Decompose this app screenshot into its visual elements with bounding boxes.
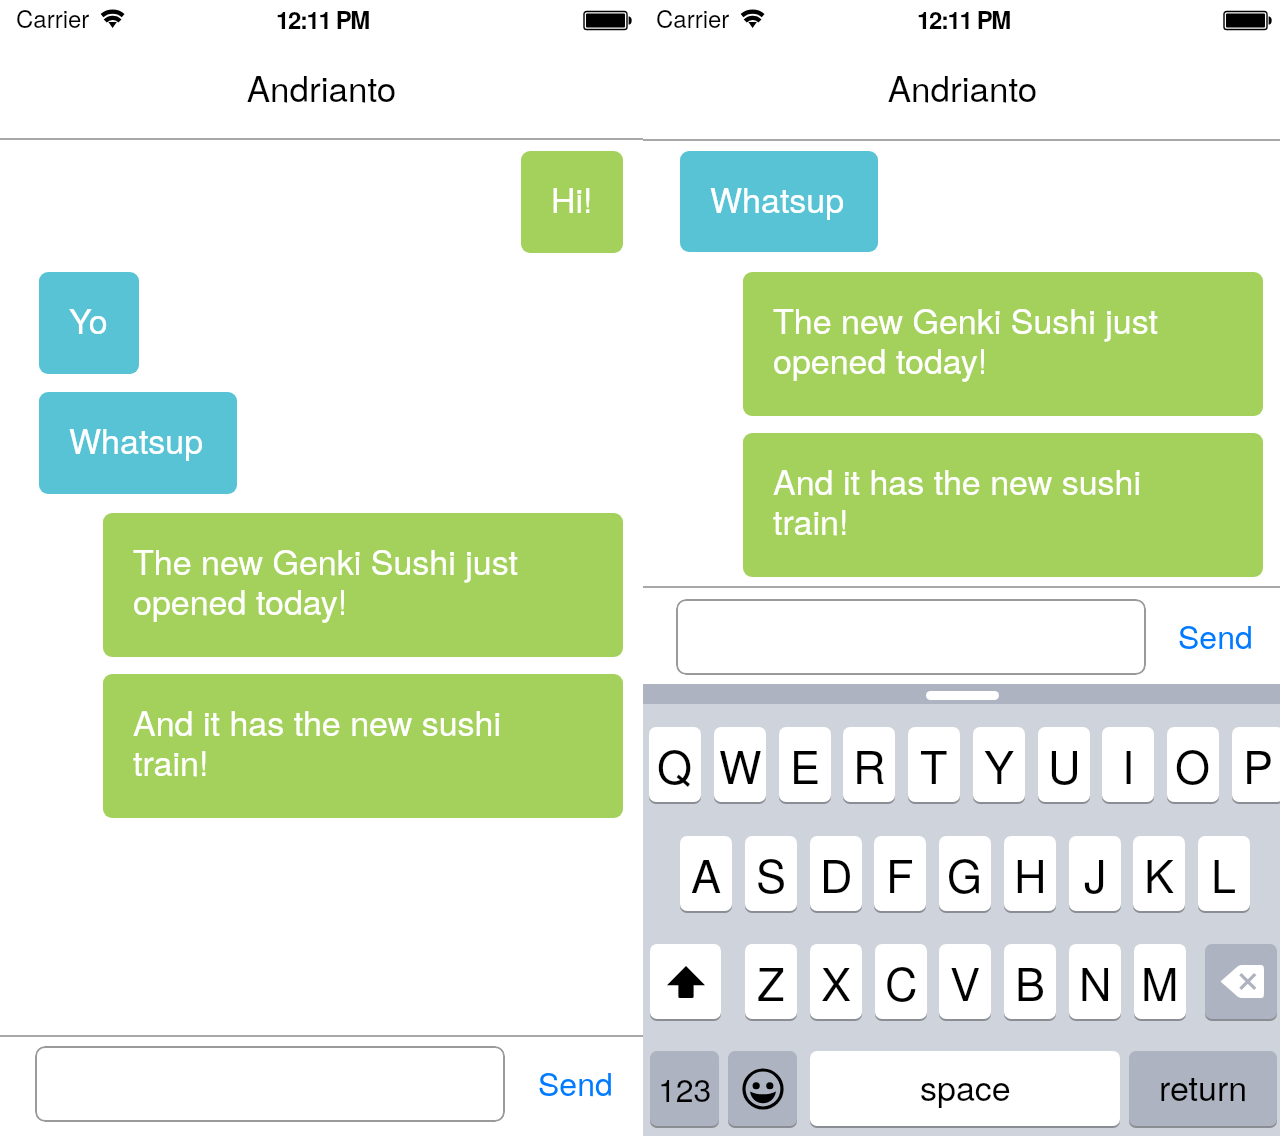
- staticText: B: [1015, 949, 1046, 1013]
- staticText: The new Genki Sushi just opened today!: [773, 295, 1158, 384]
- staticText: Yo: [69, 295, 108, 344]
- staticText: 123: [658, 1065, 712, 1111]
- staticText: Carrier: [16, 0, 90, 34]
- button[interactable]: U: [1038, 727, 1090, 802]
- staticText: C: [885, 949, 918, 1013]
- button[interactable]: Backspace: [1205, 944, 1277, 1019]
- staticText: Hi!: [551, 174, 593, 223]
- button[interactable]: The new Genki Sushi just opened today!: [103, 513, 623, 657]
- staticText: X: [821, 949, 852, 1013]
- button[interactable]: I: [1102, 727, 1154, 802]
- button[interactable]: return: [1129, 1051, 1277, 1126]
- other: Wi-Fi signal: [739, 8, 767, 30]
- staticText: And it has the new sushi train!: [133, 697, 502, 786]
- button[interactable]: Whatsup: [680, 151, 878, 252]
- button[interactable]: Shift: [650, 944, 721, 1019]
- staticText: Send: [538, 1059, 613, 1105]
- button[interactable]: Message input: [35, 1046, 505, 1122]
- button[interactable]: L: [1198, 836, 1250, 911]
- button[interactable]: P: [1232, 727, 1280, 802]
- button[interactable]: Yo: [39, 272, 139, 374]
- staticText: Andrianto: [0, 62, 643, 112]
- staticText: Whatsup: [69, 415, 204, 464]
- button[interactable]: H: [1004, 836, 1056, 911]
- staticText: O: [1175, 732, 1211, 796]
- button[interactable]: D: [810, 836, 862, 911]
- button[interactable]: space: [810, 1051, 1120, 1126]
- staticText: V: [950, 949, 981, 1013]
- button[interactable]: And it has the new sushi train!: [743, 433, 1263, 577]
- button[interactable]: F: [874, 836, 926, 911]
- button[interactable]: A: [680, 836, 732, 911]
- staticText: Send: [1178, 612, 1253, 658]
- other: Wi-Fi signal: [99, 8, 127, 30]
- staticText: W: [719, 732, 762, 796]
- button[interactable]: W: [714, 727, 766, 802]
- button[interactable]: J: [1069, 836, 1121, 911]
- staticText: The new Genki Sushi just opened today!: [133, 536, 518, 625]
- staticText: I: [1122, 732, 1135, 796]
- button[interactable]: Emoji: [728, 1051, 797, 1126]
- staticText: And it has the new sushi train!: [773, 456, 1142, 545]
- button[interactable]: S: [745, 836, 797, 911]
- button[interactable]: Hide keyboard: [926, 691, 999, 700]
- staticText: S: [756, 841, 787, 905]
- staticText: 12:11 PM: [917, 2, 1010, 36]
- button[interactable]: Whatsup: [39, 392, 237, 494]
- button[interactable]: O: [1167, 727, 1219, 802]
- staticText: T: [920, 732, 948, 796]
- button[interactable]: Q: [649, 727, 701, 802]
- button[interactable]: The new Genki Sushi just opened today!: [743, 272, 1263, 416]
- staticText: Y: [984, 732, 1015, 796]
- staticText: D: [820, 841, 853, 905]
- staticText: P: [1243, 732, 1274, 796]
- button[interactable]: N: [1069, 944, 1121, 1019]
- button[interactable]: X: [810, 944, 862, 1019]
- button[interactable]: Message input: [676, 599, 1146, 675]
- staticText: R: [853, 732, 886, 796]
- button[interactable]: Send: [1178, 612, 1253, 658]
- staticText: U: [1048, 732, 1081, 796]
- other: Battery full: [1223, 11, 1273, 30]
- staticText: return: [1159, 1062, 1248, 1111]
- staticText: 12:11 PM: [276, 2, 369, 36]
- other: Battery full: [583, 11, 633, 30]
- button[interactable]: M: [1134, 944, 1186, 1019]
- staticText: A: [691, 841, 722, 905]
- staticText: M: [1141, 949, 1179, 1013]
- button[interactable]: B: [1004, 944, 1056, 1019]
- staticText: Andrianto: [644, 62, 1280, 112]
- button[interactable]: R: [843, 727, 895, 802]
- staticText: G: [947, 841, 983, 905]
- button[interactable]: Send: [538, 1059, 613, 1105]
- button[interactable]: V: [939, 944, 991, 1019]
- staticText: Whatsup: [710, 174, 845, 223]
- button[interactable]: G: [939, 836, 991, 911]
- button[interactable]: Z: [745, 944, 797, 1019]
- button[interactable]: C: [875, 944, 927, 1019]
- button[interactable]: K: [1133, 836, 1185, 911]
- button[interactable]: Hi!: [521, 151, 623, 253]
- staticText: F: [886, 841, 914, 905]
- staticText: space: [920, 1062, 1011, 1111]
- staticText: J: [1084, 841, 1107, 905]
- button[interactable]: 123: [650, 1051, 719, 1126]
- staticText: E: [790, 732, 821, 796]
- button[interactable]: And it has the new sushi train!: [103, 674, 623, 818]
- staticText: N: [1079, 949, 1112, 1013]
- button[interactable]: T: [908, 727, 960, 802]
- staticText: K: [1144, 841, 1175, 905]
- button[interactable]: E: [779, 727, 831, 802]
- staticText: L: [1211, 841, 1237, 905]
- staticText: H: [1014, 841, 1047, 905]
- staticText: Z: [757, 949, 785, 1013]
- button[interactable]: Y: [973, 727, 1025, 802]
- staticText: Carrier: [656, 0, 730, 34]
- staticText: Q: [657, 732, 693, 796]
